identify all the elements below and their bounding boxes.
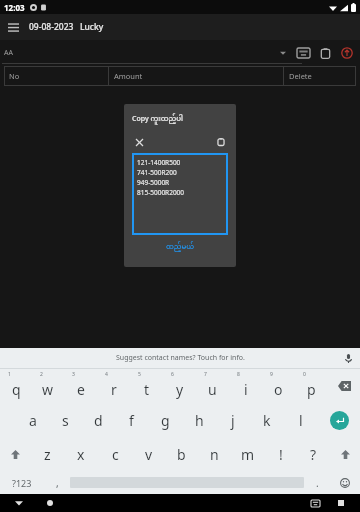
staticText: Lucky xyxy=(80,21,104,33)
button[interactable]: h xyxy=(182,403,216,437)
button[interactable]: n xyxy=(198,437,231,471)
staticText: 1 xyxy=(8,371,11,378)
button[interactable]: Keyboard input xyxy=(294,44,312,62)
staticText: ! xyxy=(279,445,283,464)
staticText: 7 xyxy=(204,371,207,378)
button[interactable]: Home xyxy=(43,496,57,510)
staticText: g xyxy=(161,411,170,430)
button[interactable]: Backspace xyxy=(328,369,360,403)
button[interactable]: Paste xyxy=(214,135,228,149)
button[interactable]: 0 xyxy=(295,369,328,403)
staticText: r xyxy=(111,380,117,399)
staticText: u xyxy=(208,380,217,399)
button[interactable]: ? xyxy=(297,437,330,471)
button[interactable]: Shift xyxy=(330,437,360,471)
button[interactable]: Switch keyboard xyxy=(308,496,322,510)
button[interactable]: Back xyxy=(12,496,26,510)
staticText: t xyxy=(144,380,150,399)
button[interactable]: ?123 xyxy=(0,471,44,494)
button[interactable]: m xyxy=(231,437,264,471)
button[interactable]: 4 xyxy=(97,369,130,403)
button[interactable]: Emoji xyxy=(330,471,360,494)
staticText: Copy ကူးထည့်ပါ xyxy=(132,112,184,127)
staticText: w xyxy=(42,380,54,399)
button[interactable]: 9 xyxy=(262,369,295,403)
button[interactable]: v xyxy=(132,437,165,471)
staticText: l xyxy=(299,411,303,430)
button[interactable]: g xyxy=(148,403,182,437)
staticText: e xyxy=(77,380,85,399)
staticText: Suggest contact names? Touch for info. xyxy=(116,353,245,363)
staticText: i xyxy=(244,380,248,399)
button[interactable]: c xyxy=(98,437,132,471)
button[interactable]: b xyxy=(165,437,198,471)
button[interactable]: d xyxy=(82,403,115,437)
staticText: q xyxy=(12,380,21,399)
button[interactable]: x xyxy=(64,437,98,471)
button[interactable]: Voice input xyxy=(342,352,354,364)
button[interactable]: 1 xyxy=(0,369,32,403)
staticText: c xyxy=(112,445,119,464)
staticText: f xyxy=(129,411,134,430)
staticText: 0 xyxy=(303,371,306,378)
button[interactable]: Clear text xyxy=(132,135,146,149)
button[interactable]: l xyxy=(284,403,318,437)
button[interactable]: s xyxy=(49,403,82,437)
button[interactable]: Paste from clipboard xyxy=(316,44,334,62)
staticText: ထည့်မယ် xyxy=(166,240,195,254)
button[interactable]: Recent apps xyxy=(334,496,348,510)
staticText: p xyxy=(307,380,316,399)
staticText: 3 xyxy=(72,371,75,378)
staticText: x xyxy=(77,445,85,464)
button[interactable]: f xyxy=(115,403,148,437)
button[interactable]: , xyxy=(44,471,70,494)
staticText: 2 xyxy=(40,371,43,378)
button[interactable]: 121-1400R500 xyxy=(137,158,228,235)
staticText: 12:03 xyxy=(4,2,25,13)
staticText: 09-08-2023 xyxy=(29,21,74,33)
button[interactable]: a xyxy=(16,403,49,437)
button[interactable]: Expand dropdown xyxy=(276,46,290,60)
staticText: 121-1400R500 xyxy=(137,158,181,167)
button[interactable]: z xyxy=(30,437,64,471)
button[interactable]: Shift xyxy=(0,437,30,471)
staticText: 4 xyxy=(105,371,108,378)
staticText: 815-5000R2000 xyxy=(137,188,185,197)
button[interactable]: 5 xyxy=(130,369,163,403)
button[interactable]: 6 xyxy=(163,369,196,403)
staticText: 949-5000R xyxy=(137,178,170,187)
button[interactable]: . xyxy=(304,471,330,494)
staticText: h xyxy=(195,411,204,430)
staticText: ? xyxy=(310,445,317,464)
button[interactable]: j xyxy=(216,403,250,437)
staticText: b xyxy=(177,445,186,464)
staticText: m xyxy=(241,445,255,464)
staticText: No xyxy=(9,71,20,81)
button[interactable]: ! xyxy=(264,437,297,471)
staticText: 741-500R200 xyxy=(137,168,177,177)
button[interactable]: Open navigation menu xyxy=(0,14,26,40)
staticText: k xyxy=(263,411,271,430)
staticText: y xyxy=(176,380,184,399)
staticText: o xyxy=(274,380,283,399)
staticText: ?123 xyxy=(12,477,32,489)
button[interactable]: 7 xyxy=(196,369,229,403)
button[interactable]: Enter xyxy=(318,403,360,437)
staticText: Amount xyxy=(114,71,143,81)
button[interactable]: ထည့်မယ် xyxy=(132,240,228,254)
staticText: 6 xyxy=(171,371,174,378)
staticText: d xyxy=(94,411,103,430)
button[interactable]: Alert xyxy=(338,44,356,62)
staticText: a xyxy=(29,411,37,430)
staticText: 9 xyxy=(270,371,273,378)
staticText: 8 xyxy=(237,371,240,378)
staticText: 5 xyxy=(138,371,141,378)
button[interactable]: 3 xyxy=(64,369,97,403)
staticText: z xyxy=(44,445,51,464)
staticText: n xyxy=(210,445,219,464)
button[interactable]: k xyxy=(250,403,284,437)
button[interactable]: 2 xyxy=(32,369,64,403)
button[interactable]: 8 xyxy=(229,369,262,403)
staticText: j xyxy=(231,411,235,430)
